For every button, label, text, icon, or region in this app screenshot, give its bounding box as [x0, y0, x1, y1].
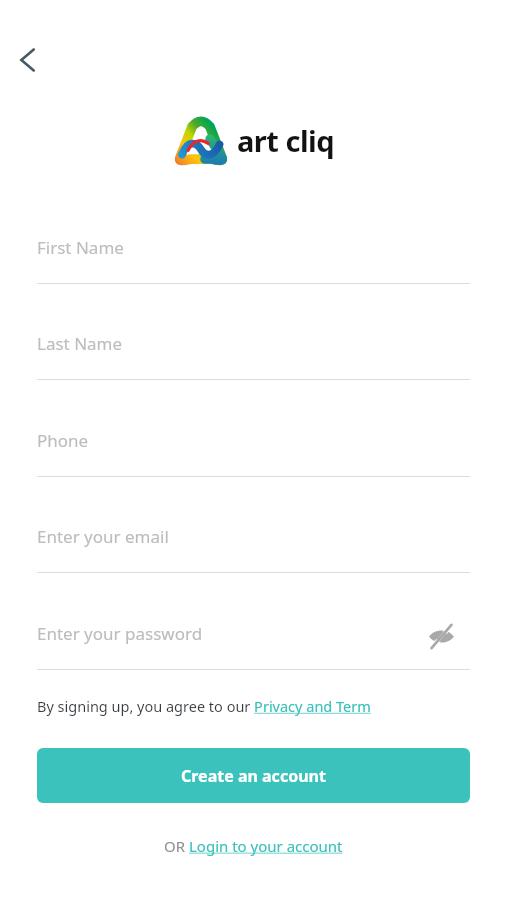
staticText: OR [164, 836, 189, 856]
button[interactable]: Phone [37, 421, 470, 477]
staticText: First Name [37, 236, 124, 259]
staticText: By signing up, you agree to our Privacy … [37, 696, 371, 716]
staticText: Phone [37, 429, 89, 452]
button[interactable]: Login to your account [189, 836, 343, 856]
staticText: Login to your account [189, 836, 343, 856]
button[interactable]: Enter your password [37, 614, 470, 670]
button[interactable]: Last Name [37, 324, 470, 380]
staticText: Enter your email [37, 525, 169, 548]
button[interactable]: Show password [417, 612, 465, 660]
button[interactable]: Back [6, 39, 48, 81]
staticText: Enter your password [37, 622, 203, 645]
button[interactable]: First Name [37, 228, 470, 284]
button[interactable]: By signing up, you agree to our Privacy … [37, 693, 371, 719]
staticText: art cliq [237, 121, 335, 160]
button[interactable]: Enter your email [37, 517, 470, 573]
button[interactable]: Create an account [37, 748, 470, 803]
staticText: Create an account [181, 765, 326, 787]
staticText: Last Name [37, 332, 123, 355]
